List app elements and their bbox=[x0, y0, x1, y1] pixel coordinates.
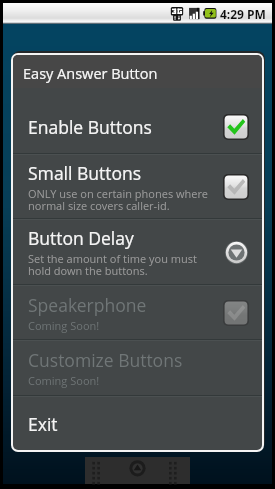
staticText: ONLY use on certain phones where normal … bbox=[28, 186, 208, 213]
button[interactable]: Button Delay bbox=[13, 220, 262, 284]
staticText: Enable Buttons bbox=[28, 115, 152, 139]
button[interactable]: Exit bbox=[13, 397, 262, 450]
button[interactable]: Toggle bbox=[223, 114, 249, 140]
staticText: Exit bbox=[28, 412, 58, 436]
button[interactable]: Toggle bbox=[223, 300, 249, 326]
staticText: Customize Buttons bbox=[28, 348, 183, 372]
staticText: Easy Answer Button bbox=[23, 64, 158, 84]
staticText: Speakerphone bbox=[28, 293, 147, 317]
staticText: 4:29 PM bbox=[220, 6, 266, 22]
button[interactable]: Toggle bbox=[223, 174, 249, 200]
button[interactable]: Speakerphone bbox=[13, 286, 262, 339]
staticText: Set the amount of time you must hold dow… bbox=[28, 251, 197, 278]
button[interactable]: Enable Buttons bbox=[13, 88, 262, 153]
staticText: Small Buttons bbox=[28, 161, 142, 185]
button[interactable]: Customize Buttons bbox=[13, 341, 262, 395]
staticText: Coming Soon! bbox=[28, 373, 100, 388]
button[interactable]: Small Buttons bbox=[13, 155, 262, 218]
staticText: Coming Soon! bbox=[28, 318, 100, 333]
staticText: Button Delay bbox=[28, 226, 134, 250]
button[interactable]: Choose delay bbox=[225, 241, 248, 264]
